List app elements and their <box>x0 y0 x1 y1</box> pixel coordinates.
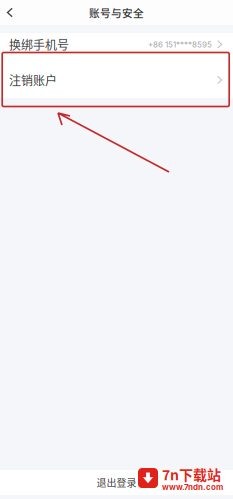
staticText: 换绑手机号 <box>9 36 69 53</box>
staticText: 7n下载站 <box>162 464 221 484</box>
staticText: 退出登录 <box>96 475 136 490</box>
staticText: 账号与安全 <box>89 5 144 20</box>
staticText: www.7ndn.com <box>162 482 223 492</box>
button[interactable]: 注销账户 <box>0 53 233 98</box>
button[interactable]: 退出登录 <box>0 470 233 495</box>
staticText: +86 151****8595 <box>148 40 212 49</box>
button[interactable]: 返回 <box>0 0 20 25</box>
button[interactable]: 换绑手机号 <box>0 33 233 53</box>
staticText: 注销账户 <box>9 71 57 89</box>
